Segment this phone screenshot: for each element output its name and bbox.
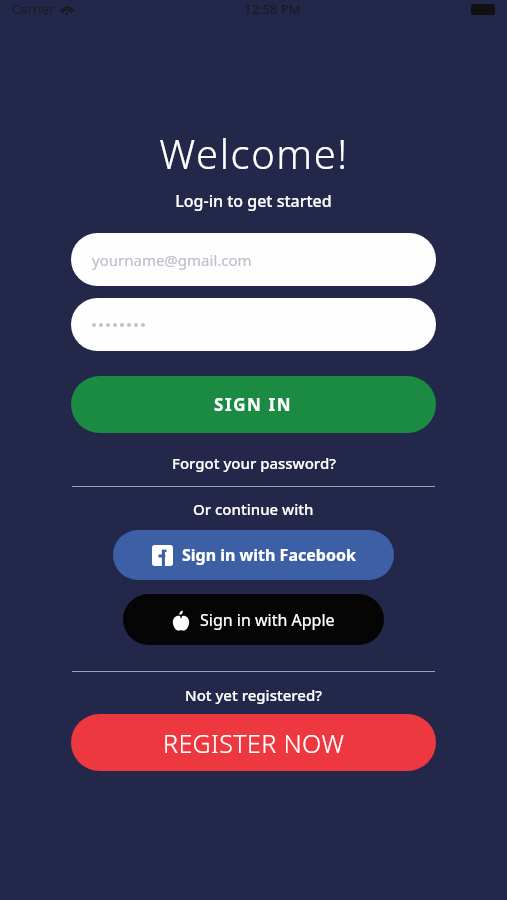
staticText: REGISTER NOW bbox=[163, 726, 345, 760]
staticText: Sign in with Apple bbox=[200, 609, 335, 631]
other: Facebook bbox=[152, 545, 173, 566]
staticText: Welcome! bbox=[159, 126, 349, 180]
button[interactable]: Facebook bbox=[113, 530, 394, 580]
button[interactable]: REGISTER NOW bbox=[71, 714, 436, 771]
staticText: Carrier bbox=[12, 0, 55, 18]
button[interactable] bbox=[71, 298, 436, 351]
button[interactable]: Apple bbox=[123, 594, 384, 645]
staticText: 12:58 PM bbox=[244, 0, 301, 18]
other: Apple bbox=[172, 610, 190, 631]
button[interactable]: Forgot your password? bbox=[164, 451, 344, 475]
staticText: Log-in to get started bbox=[175, 190, 332, 212]
staticText: SIGN IN bbox=[214, 393, 293, 416]
button[interactable]: yourname@gmail.com bbox=[71, 233, 436, 286]
button[interactable]: SIGN IN bbox=[71, 376, 436, 433]
staticText: Sign in with Facebook bbox=[182, 544, 356, 566]
staticText: Forgot your password? bbox=[172, 453, 336, 473]
staticText: Or continue with bbox=[193, 499, 314, 519]
staticText: Not yet registered? bbox=[185, 685, 322, 705]
staticText: yourname@gmail.com bbox=[92, 250, 252, 270]
